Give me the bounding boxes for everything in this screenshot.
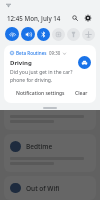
button[interactable]: Beta Routines bbox=[4, 45, 96, 103]
button[interactable]: Cast screen bbox=[52, 28, 65, 41]
staticText: Did you just get in the car? Optimize yo… bbox=[10, 69, 75, 76]
staticText: Beta Routines bbox=[16, 50, 47, 56]
button[interactable]: Notification settings bbox=[13, 88, 68, 99]
button[interactable]: Sound bbox=[21, 27, 35, 41]
staticText: phone for driving. bbox=[10, 77, 53, 84]
button[interactable]: Wi-Fi bbox=[5, 27, 19, 41]
staticText: Bedtime bbox=[26, 142, 53, 151]
button[interactable]: Settings bbox=[82, 12, 93, 23]
button[interactable]: Search settings bbox=[69, 12, 80, 23]
button[interactable]: Bluetooth bbox=[37, 28, 50, 41]
button[interactable]: Flashlight bbox=[67, 28, 80, 41]
staticText: Driving bbox=[10, 59, 32, 67]
staticText: 09:30 bbox=[49, 50, 61, 56]
button[interactable]: Driving bbox=[4, 92, 96, 130]
staticText: Notification settings bbox=[16, 90, 65, 97]
staticText: Driving bbox=[26, 100, 49, 109]
staticText: 12:45 Mon, July 14 bbox=[7, 14, 61, 22]
button[interactable]: Bedtime bbox=[4, 134, 96, 172]
button[interactable]: Clear bbox=[72, 88, 91, 99]
button[interactable]: Out of Wifi bbox=[4, 176, 96, 200]
staticText: Clear bbox=[75, 90, 88, 97]
button[interactable]: Driving mode bbox=[78, 56, 91, 69]
staticText: Out of Wifi bbox=[26, 184, 60, 193]
button[interactable]: Airplane mode bbox=[82, 28, 95, 41]
